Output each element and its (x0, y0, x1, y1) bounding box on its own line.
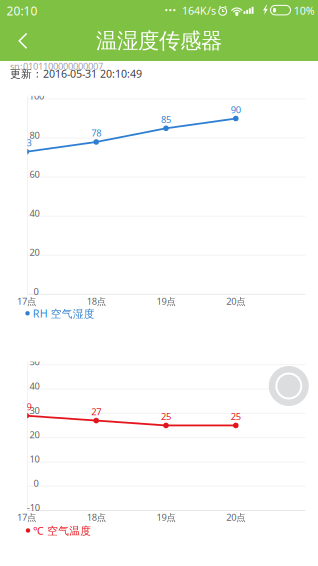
staticText: 80 (29, 129, 39, 141)
staticText: 20 (29, 428, 39, 441)
staticText: 73 (21, 136, 31, 149)
button[interactable]: Floating assistive button (269, 366, 309, 406)
staticText: 18点 (87, 511, 106, 523)
staticText: 29 (21, 400, 31, 413)
button[interactable]: Back (0, 22, 46, 60)
staticText: 27 (91, 405, 101, 418)
staticText: 20 (29, 246, 39, 258)
staticText: 18点 (87, 295, 106, 307)
staticText: 40 (29, 380, 39, 392)
staticText: 19点 (156, 511, 175, 523)
staticText: 20点 (226, 511, 245, 523)
staticText: RH 空气湿度 (33, 306, 95, 320)
staticText: 78 (91, 127, 101, 139)
staticText: 17点 (17, 295, 36, 307)
staticText: 0 (34, 285, 39, 297)
staticText: 17点 (17, 511, 36, 523)
staticText: 40 (29, 207, 39, 219)
staticText: ℃ 空气温度 (33, 523, 91, 538)
staticText: -10 (27, 501, 40, 514)
staticText: 25 (161, 410, 171, 423)
staticText: 30 (29, 404, 39, 416)
staticText: 60 (29, 168, 39, 180)
staticText: 0 (34, 477, 39, 489)
staticText: 100 (29, 90, 44, 102)
staticText: 85 (161, 113, 171, 125)
staticText: 19点 (156, 295, 175, 307)
staticText: 温湿度传感器 (96, 28, 222, 54)
staticText: ••• (164, 3, 176, 16)
staticText: 10 (29, 453, 39, 465)
staticText: 164K/s (182, 4, 216, 18)
staticText: sn:0101100000000007 (10, 60, 103, 72)
staticText: 更新：2016-05-31 20:10:49 (10, 66, 142, 81)
staticText: 25 (231, 410, 241, 423)
staticText: 10% (294, 4, 315, 18)
staticText: 90 (231, 103, 241, 116)
staticText: 50 (29, 355, 39, 368)
staticText: 20:10 (6, 3, 37, 19)
staticText: 20点 (226, 295, 245, 307)
